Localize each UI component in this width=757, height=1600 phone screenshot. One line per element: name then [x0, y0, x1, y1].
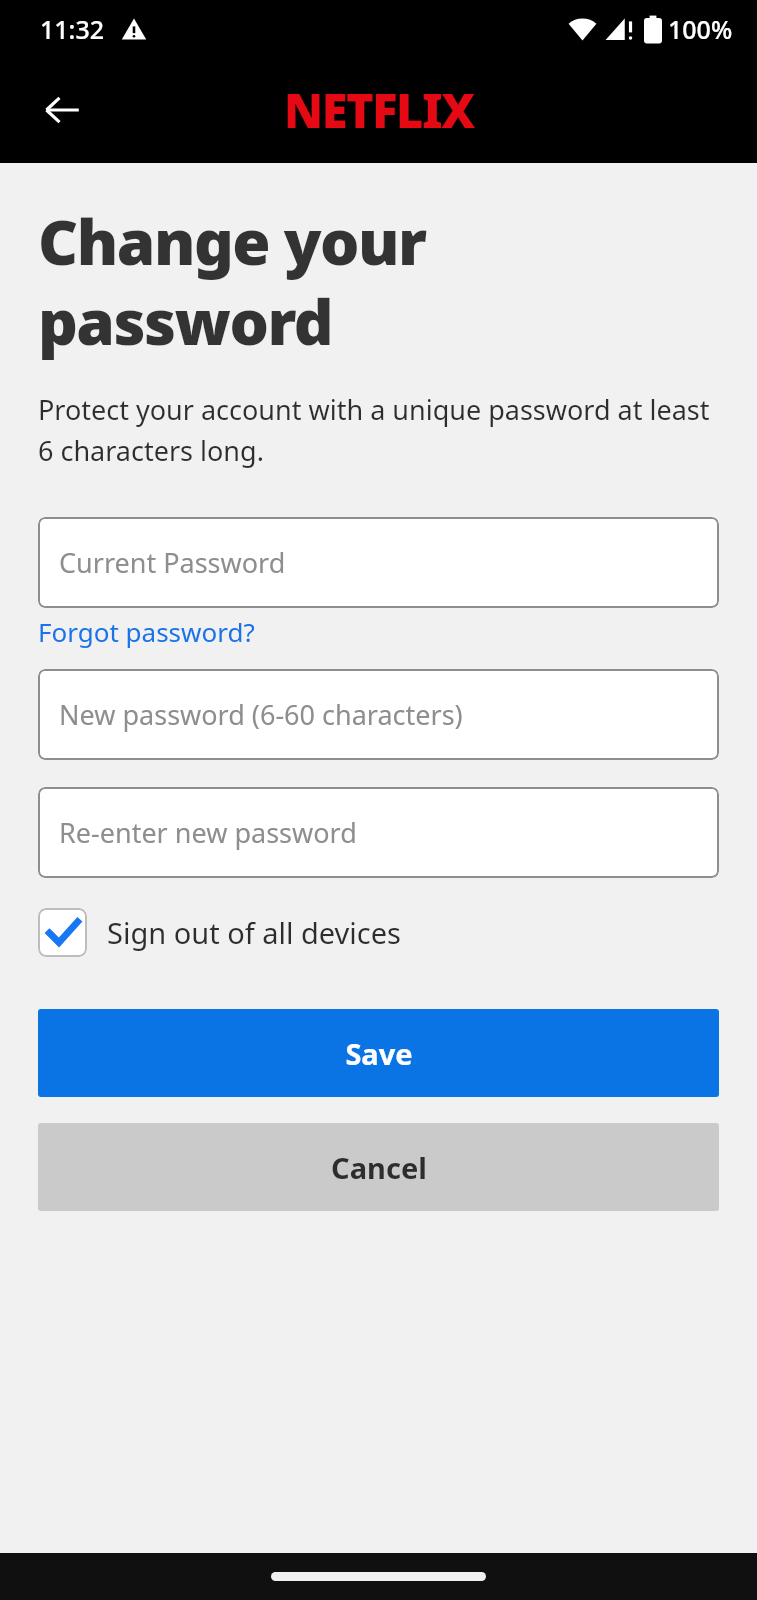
staticText: Protect your account with a unique passw…: [38, 391, 719, 469]
button[interactable]: Sign out of all devices: [38, 903, 402, 962]
staticText: Re-enter new password: [59, 814, 357, 851]
staticText: NETFLIX: [284, 78, 474, 142]
staticText: 11:32: [40, 12, 105, 46]
button[interactable]: Current Password: [38, 517, 719, 608]
staticText: Sign out of all devices: [107, 913, 402, 952]
staticText: 100%: [668, 12, 733, 46]
button[interactable]: Re-enter new password: [38, 787, 719, 878]
button[interactable]: New password (6-60 characters): [38, 669, 719, 760]
staticText: Forgot password?: [38, 614, 255, 649]
button[interactable]: Save: [38, 1009, 719, 1097]
button[interactable]: Back: [20, 68, 104, 152]
staticText: New password (6-60 characters): [59, 696, 463, 733]
staticText: Save: [345, 1034, 413, 1073]
staticText: Current Password: [59, 544, 286, 581]
staticText: Change your password: [38, 199, 426, 363]
staticText: Cancel: [331, 1148, 427, 1187]
button[interactable]: Cancel: [38, 1123, 719, 1211]
button[interactable]: Forgot password?: [38, 611, 255, 652]
